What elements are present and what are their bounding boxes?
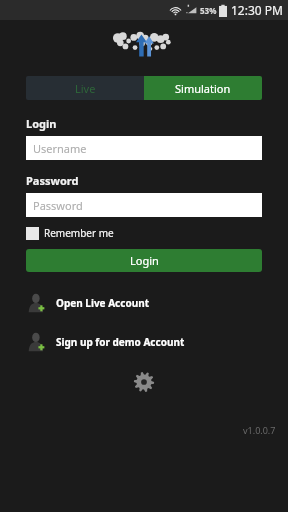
- staticText: Remember me: [44, 226, 114, 240]
- staticText: Sign up for demo Account: [56, 335, 185, 349]
- staticText: Open Live Account: [56, 296, 149, 310]
- button[interactable]: Remember me: [26, 226, 114, 240]
- other: Sign up for demo Account: [26, 331, 48, 353]
- other: Open Live Account: [26, 292, 48, 314]
- staticText: Simulation: [175, 81, 231, 96]
- button[interactable]: Settings: [133, 371, 155, 393]
- button[interactable]: Username: [26, 136, 262, 160]
- staticText: Password: [33, 198, 83, 213]
- staticText: Live: [75, 81, 96, 96]
- button[interactable]: Sign up for demo Account: [26, 331, 262, 353]
- button[interactable]: Simulation: [144, 76, 262, 100]
- button[interactable]: Open Live Account: [26, 292, 262, 314]
- staticText: 53%: [200, 5, 217, 16]
- button[interactable]: Live: [26, 76, 144, 100]
- staticText: 12:30 PM: [231, 2, 283, 18]
- staticText: Username: [33, 141, 87, 156]
- staticText: v1.0.0.7: [243, 424, 276, 436]
- button[interactable]: Login: [26, 249, 262, 272]
- staticText: Login: [130, 253, 159, 268]
- staticText: Password: [26, 173, 79, 188]
- staticText: Login: [26, 116, 57, 131]
- button[interactable]: Password: [26, 193, 262, 217]
